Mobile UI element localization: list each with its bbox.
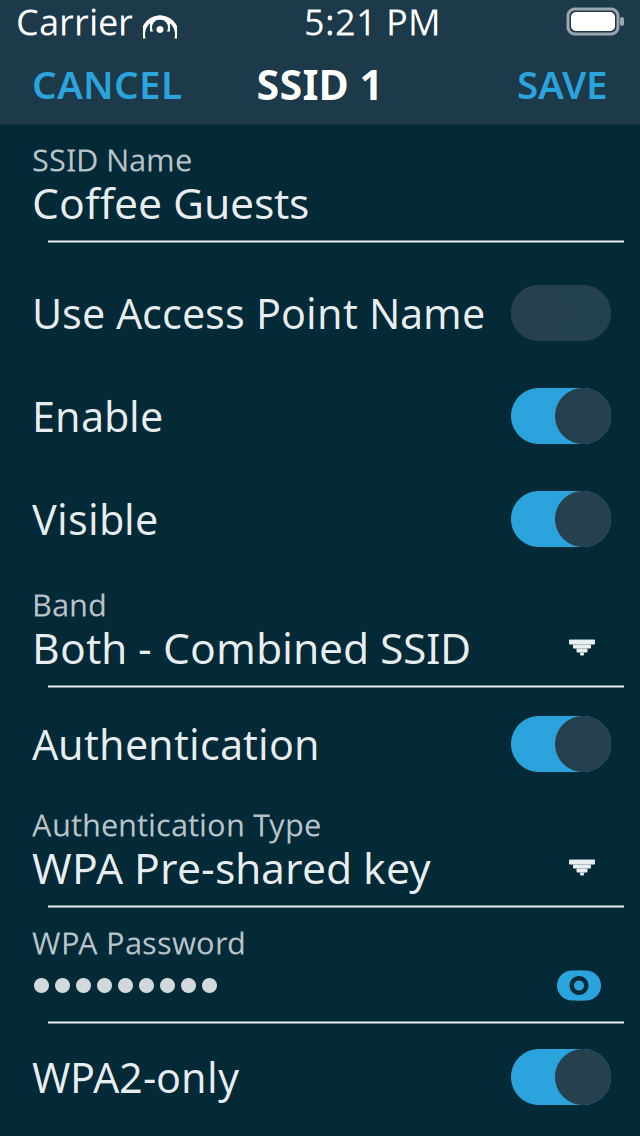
staticText: Coffee Guests (32, 174, 309, 231)
staticText: CANCEL (32, 58, 182, 110)
staticText: Enable (32, 389, 163, 443)
staticText: SAVE (517, 58, 608, 110)
staticText: Carrier (16, 0, 133, 45)
staticText: Use Access Point Name (32, 286, 485, 340)
staticText: Band (32, 584, 107, 625)
button[interactable]: Visible (0, 467, 640, 570)
button[interactable]: Band (0, 585, 640, 671)
button[interactable]: Authentication (0, 692, 640, 795)
button[interactable]: CANCEL (0, 46, 196, 122)
staticText: Authentication (32, 717, 320, 771)
button[interactable]: Enable (0, 364, 640, 467)
staticText: SSID 1 (256, 57, 383, 111)
button[interactable]: SAVE (503, 46, 640, 122)
staticText: SSID Name (32, 139, 192, 180)
staticText: 5:21 PM (304, 0, 441, 45)
button[interactable]: Authentication Type (0, 805, 640, 891)
staticText: Visible (32, 492, 158, 546)
button[interactable]: Show password (548, 961, 610, 1009)
staticText: WPA2-only (32, 1050, 239, 1104)
button[interactable]: Use Access Point Name (0, 261, 640, 364)
staticText: WPA Password (32, 922, 246, 963)
staticText: Both - Combined SSID (32, 619, 471, 676)
staticText: Authentication Type (32, 804, 321, 845)
staticText: WPA Pre-shared key (32, 839, 431, 896)
button[interactable]: WPA2-only (0, 1025, 640, 1128)
